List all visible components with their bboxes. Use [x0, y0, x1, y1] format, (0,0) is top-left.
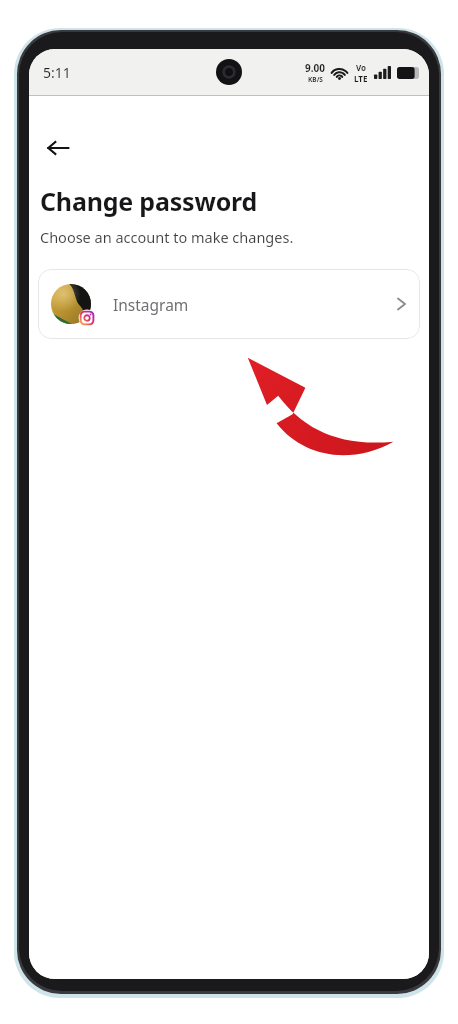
staticText: 9.00 — [305, 61, 325, 75]
staticText: Instagram — [113, 294, 189, 315]
staticText: Choose an account to make changes. — [40, 227, 294, 247]
staticText: Change password — [40, 184, 258, 218]
button[interactable]: Back — [34, 124, 82, 172]
staticText: LTE — [354, 73, 368, 84]
button[interactable]: Instagram — [38, 269, 420, 339]
staticText: KB/S — [308, 75, 323, 84]
staticText: 5:11 — [43, 63, 71, 82]
staticText: Vo — [356, 62, 367, 73]
